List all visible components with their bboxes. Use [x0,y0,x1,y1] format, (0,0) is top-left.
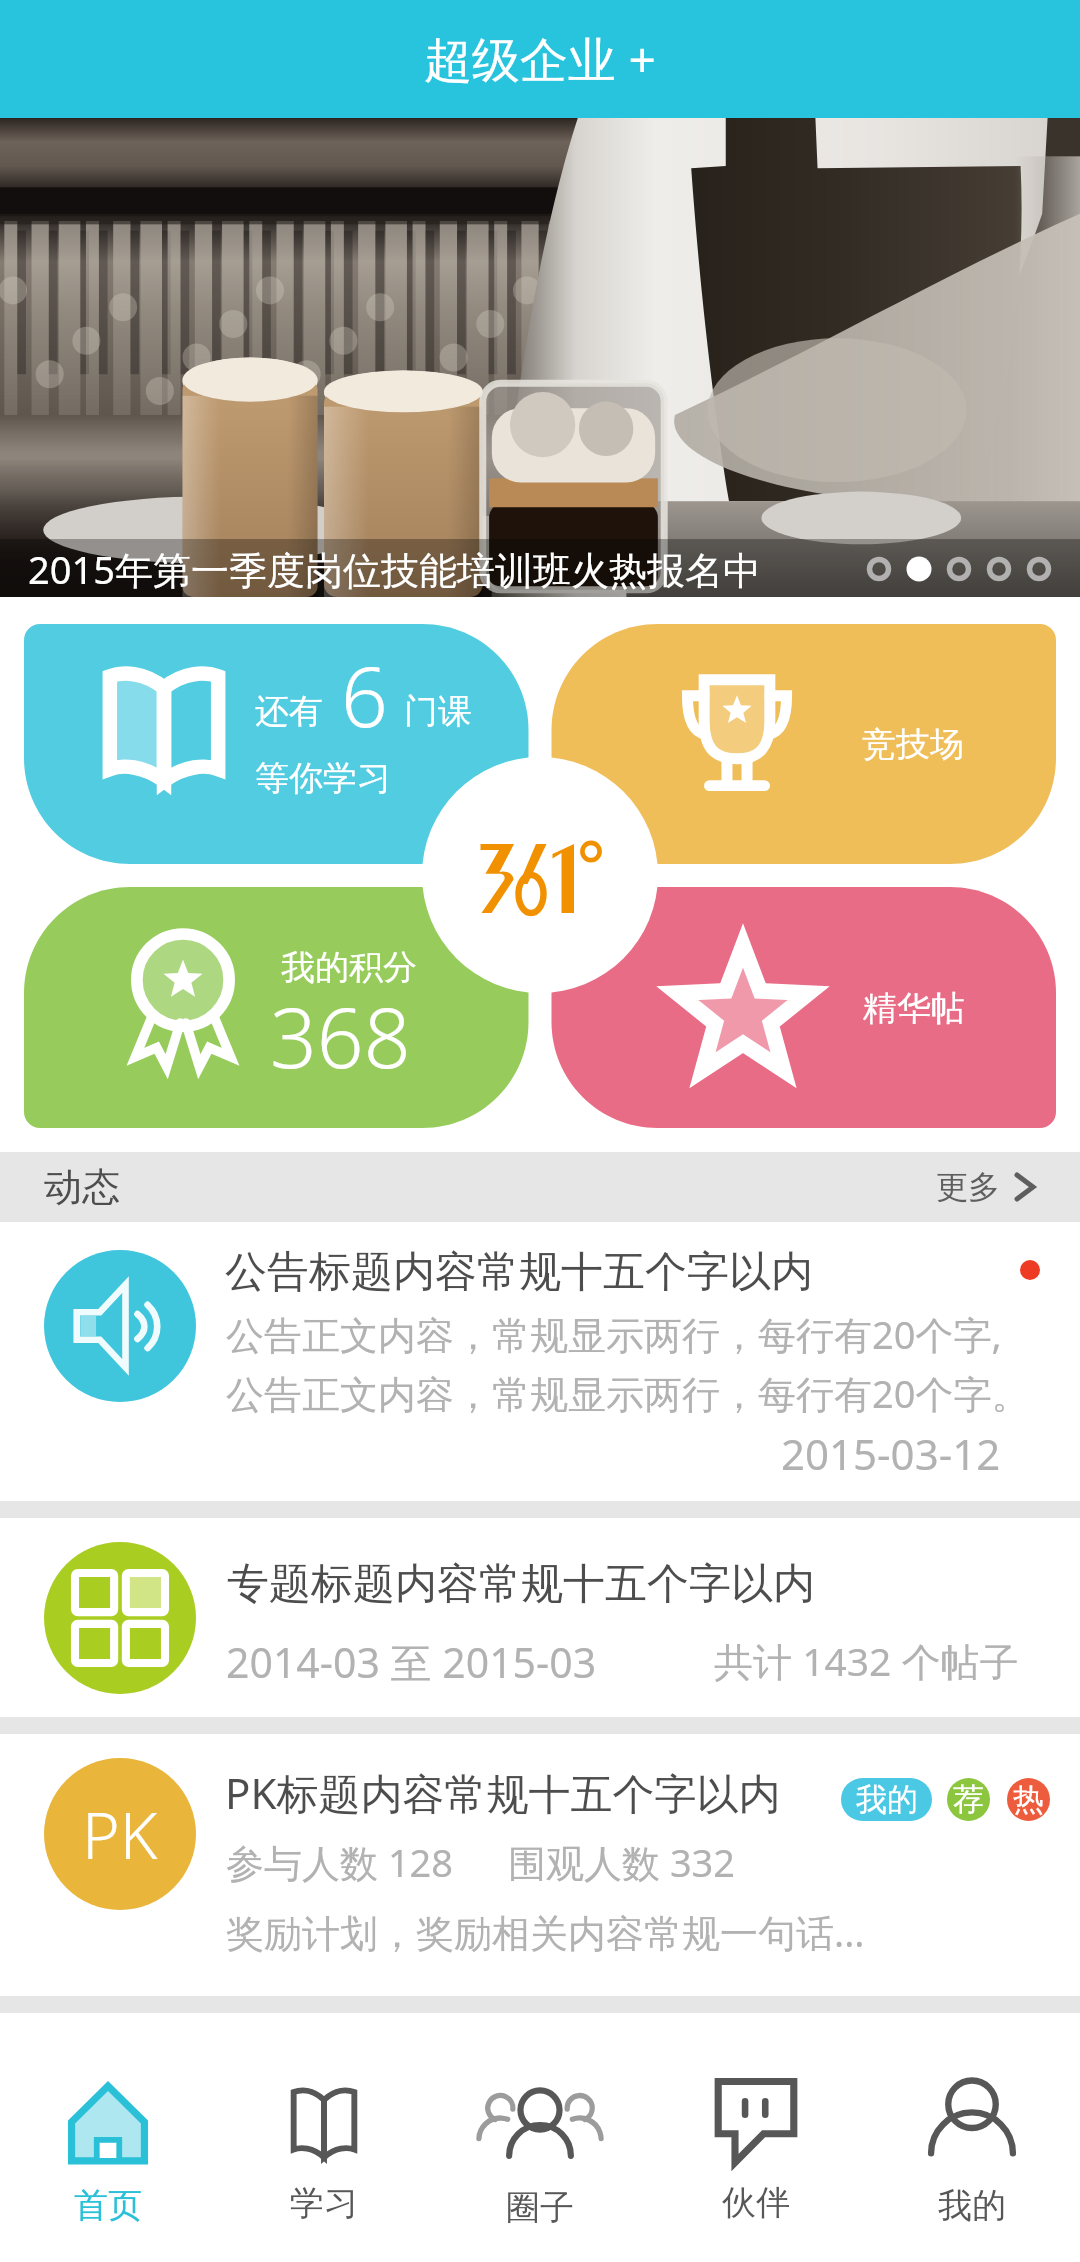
staticText: 动态 [44,1163,120,1211]
staticText: 我的 [938,2184,1006,2227]
staticText: 竞技场 [862,723,964,766]
staticText: 我的 [856,1780,918,1819]
staticText: PK [82,1791,158,1878]
staticText: 专题标题内容常规十五个字以内 [227,1558,815,1611]
staticText: 368 [270,980,411,1092]
button[interactable]: 我的 [864,2030,1080,2262]
staticText: 公告标题内容常规十五个字以内 [225,1246,813,1299]
staticText: 2015-03-12 [781,1425,1001,1482]
button[interactable]: 首页 [0,2030,216,2262]
button[interactable]: 公告标题内容常规十五个字以内 [0,1222,1080,1501]
button[interactable]: PK [0,1734,1080,1996]
staticText: 圈子 [506,2186,574,2229]
staticText: 我的积分 [281,946,417,989]
staticText: 公告正文内容，常规显示两行，每行有20个字, [226,1308,1002,1360]
staticText: 荐 [953,1780,984,1819]
button[interactable]: 动态 [0,1152,1080,1222]
staticText: 2014-03 至 2015-03 [226,1634,597,1690]
button[interactable]: 荐 [947,1778,990,1821]
staticText: 学习 [290,2182,358,2225]
button[interactable]: 学习 [216,2030,432,2262]
button[interactable]: 超级企业 + [0,0,1080,118]
staticText: 等你学习 [255,757,391,800]
staticText: 首页 [74,2184,142,2227]
staticText: 门课 [404,690,472,733]
button[interactable]: 我的 [841,1778,932,1821]
staticText: 更多 [936,1167,1000,1207]
staticText: 奖励计划，奖励相关内容常规一句话... [226,1906,865,1958]
staticText: 2015年第一季度岗位技能培训班火热报名中 [28,543,761,595]
button[interactable]: 专题标题内容常规十五个字以内 [0,1518,1080,1717]
button[interactable]: 圈子 [432,2030,648,2262]
staticText: 围观人数 332 [508,1836,736,1888]
staticText: 超级企业 + [424,26,656,92]
staticText: 共计 1432 个帖子 [714,1634,1019,1687]
staticText: PK标题内容常规十五个字以内 [225,1764,781,1821]
button[interactable]: 2015年第一季度岗位技能培训班火热报名中 [0,118,1080,597]
staticText: 精华帖 [863,987,965,1030]
button[interactable]: 伙伴 [648,2030,864,2262]
staticText: 公告正文内容，常规显示两行，每行有20个字。 [226,1367,1030,1419]
button[interactable]: 热 [1007,1778,1050,1821]
staticText: 参与人数 128 [226,1836,454,1888]
staticText: 热 [1013,1780,1044,1819]
staticText: 伙伴 [722,2181,790,2224]
staticText: 6 [341,639,388,751]
staticText: 还有 [255,690,323,733]
